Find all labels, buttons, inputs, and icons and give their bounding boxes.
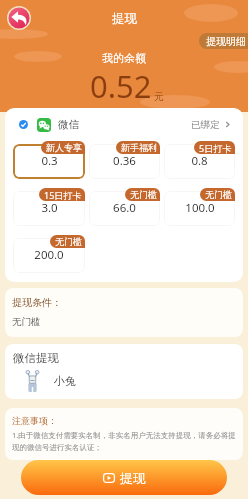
staticText: 100.0 <box>185 200 215 216</box>
staticText: 微信提现 <box>13 351 59 365</box>
staticText: 66.0 <box>113 200 136 216</box>
staticText: 0.3 <box>41 153 58 169</box>
button[interactable]: 200.0 <box>13 238 85 273</box>
button[interactable]: 微信 <box>5 108 243 141</box>
staticText: 已绑定 <box>191 119 220 131</box>
staticText: 提现明细 <box>206 35 246 48</box>
staticText: 200.0 <box>34 247 64 263</box>
staticText: 小兔 <box>54 374 76 388</box>
staticText: 注意事项： <box>12 415 57 426</box>
staticText: 3.0 <box>41 200 58 216</box>
staticText: 0.52 <box>90 65 152 107</box>
button[interactable]: Back <box>7 6 31 30</box>
button[interactable]: 3.0 <box>13 191 85 226</box>
staticText: 新手福利 <box>121 142 157 153</box>
staticText: 提现条件： <box>12 296 62 309</box>
button[interactable]: 提现明细 <box>199 33 248 49</box>
staticText: 提现 <box>120 470 146 486</box>
staticText: 15日打卡 <box>44 189 82 201</box>
staticText: 提现 <box>112 11 137 27</box>
staticText: 无门槛 <box>12 316 41 328</box>
staticText: 无门槛 <box>55 236 82 247</box>
staticText: 1.由于微信支付需要实名制，非实名用户无法支持提现，请务必将提现的微信号进行实名… <box>12 430 237 452</box>
button[interactable]: 0.36 <box>89 144 160 179</box>
staticText: 5日打卡 <box>199 142 232 154</box>
staticText: 无门槛 <box>130 189 157 200</box>
button[interactable]: 100.0 <box>164 191 235 226</box>
staticText: 无门槛 <box>205 189 232 200</box>
staticText: 新人专享 <box>46 142 82 153</box>
staticText: 微信 <box>58 118 79 131</box>
button[interactable]: 提现 <box>21 460 227 495</box>
staticText: 元 <box>154 90 164 103</box>
staticText: 0.36 <box>113 153 136 169</box>
staticText: 0.8 <box>191 153 208 169</box>
button[interactable]: 0.3 <box>13 144 85 179</box>
staticText: 我的余额 <box>102 51 146 65</box>
button[interactable]: 66.0 <box>89 191 160 226</box>
button[interactable]: 0.8 <box>164 144 235 179</box>
